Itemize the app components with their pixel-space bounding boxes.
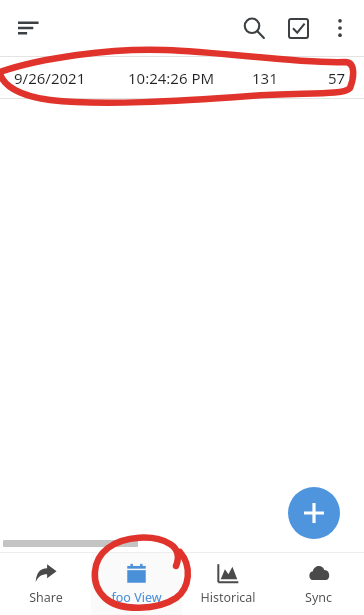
button[interactable]: Historical [182,553,273,615]
button[interactable]: foo View [91,553,182,615]
button[interactable]: Select all [276,6,320,50]
button[interactable]: Search [232,6,276,50]
button[interactable]: More options [320,8,360,48]
staticText: 57 [328,68,346,88]
button[interactable]: Add [288,487,340,539]
button[interactable]: Sort [6,6,50,50]
staticText: 9/26/2021 [14,68,86,88]
staticText: Sync [305,589,332,606]
button[interactable]: Share [0,553,91,615]
staticText: 10:24:26 PM [128,68,215,88]
staticText: Historical [200,589,256,606]
button[interactable]: Sync [273,553,364,615]
staticText: Share [29,589,63,606]
staticText: 131 [252,68,278,88]
staticText: foo View [111,589,162,606]
button[interactable]: 9/26/2021 [0,57,364,98]
